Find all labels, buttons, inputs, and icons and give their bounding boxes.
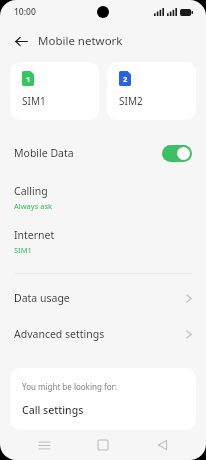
staticText: SIM2 <box>119 94 143 108</box>
button[interactable]: 2 <box>107 62 196 120</box>
staticText: Advanced settings <box>14 327 105 341</box>
staticText: SIM1 <box>22 94 46 108</box>
staticText: Data usage <box>14 291 70 305</box>
staticText: You might be looking for: <box>22 381 117 392</box>
button[interactable]: Advanced settings <box>0 324 206 344</box>
staticText: Calling <box>14 184 48 198</box>
staticText: Mobile network <box>38 33 123 49</box>
button[interactable]: Mobile Data toggle <box>162 145 192 162</box>
staticText: 1 <box>26 74 31 84</box>
button[interactable]: Internet <box>0 226 206 257</box>
button[interactable]: 1 <box>10 62 99 120</box>
button[interactable]: Home <box>88 430 118 460</box>
staticText: Always ask <box>14 201 53 211</box>
button[interactable]: You might be looking for: <box>10 368 196 430</box>
staticText: SIM1 <box>14 245 32 255</box>
staticText: Internet <box>14 228 55 242</box>
button[interactable]: Recent apps <box>29 430 59 460</box>
staticText: 10:00 <box>14 6 36 18</box>
button[interactable]: Calling <box>0 182 206 213</box>
button[interactable]: Data usage <box>0 288 206 308</box>
button[interactable]: Mobile Data <box>0 138 206 168</box>
button[interactable]: Back <box>147 430 177 460</box>
staticText: Mobile Data <box>14 146 74 160</box>
button[interactable]: Back <box>8 28 34 54</box>
staticText: Call settings <box>22 403 84 417</box>
staticText: 2 <box>123 74 128 84</box>
